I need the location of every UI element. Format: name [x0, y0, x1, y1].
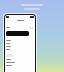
button[interactable]	[6, 31, 29, 36]
